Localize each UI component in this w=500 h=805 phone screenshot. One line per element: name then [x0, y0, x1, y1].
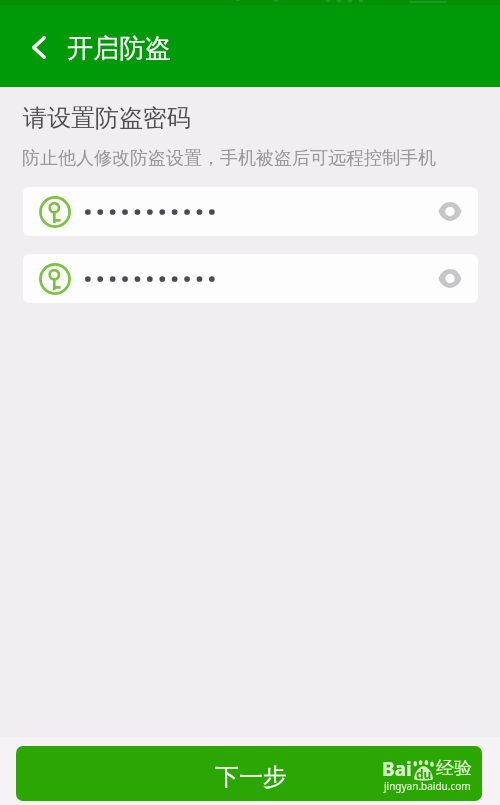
staticText: jingyan.baidu.com: [384, 779, 471, 793]
staticText: 防止他人修改防盗设置，手机被盗后可远程控制手机: [22, 147, 436, 170]
staticText: 下一步: [215, 762, 287, 792]
staticText: 请设置防盗密码: [23, 103, 191, 133]
button[interactable]: Back: [10, 0, 67, 87]
button[interactable]: Show password: [23, 254, 478, 303]
button[interactable]: 下一步: [16, 746, 482, 801]
staticText: du: [416, 766, 432, 782]
staticText: Bai: [382, 756, 412, 782]
staticText: 经验: [436, 757, 472, 780]
staticText: 开启防盗: [67, 32, 171, 65]
button[interactable]: Show password: [424, 254, 478, 303]
button[interactable]: Show password: [424, 187, 478, 236]
button[interactable]: Show password: [23, 187, 478, 236]
